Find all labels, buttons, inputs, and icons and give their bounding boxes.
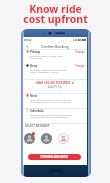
staticText: Change <box>75 50 85 54</box>
staticText: Schedule bookings and reserve your spot … <box>30 113 73 119</box>
staticText: Start booking now to lock in service at … <box>30 98 72 104</box>
staticText: Drop <box>30 64 38 68</box>
button[interactable]: Drop <box>26 64 85 74</box>
button[interactable]: Add payment method <box>58 133 69 144</box>
button[interactable]: Now <box>26 94 85 104</box>
staticText: Change <box>75 64 85 68</box>
button[interactable]: Schedule <box>26 109 85 119</box>
staticText: Emporio Tower, Vasant Kunj New Delhi <box>30 54 63 60</box>
staticText: Now <box>30 94 38 98</box>
button[interactable]: Back <box>25 44 30 49</box>
staticText: Terminal 3 International Airport Delhi, … <box>30 68 68 74</box>
staticText: Pickup <box>30 50 41 54</box>
staticText: CONFIRM AND BOOK <box>40 155 69 159</box>
staticText: Know ride cost upfront <box>23 2 88 26</box>
staticText: SAVE ₹50 ON THIS RIDE <box>36 81 71 85</box>
button[interactable]: Pickup <box>26 50 85 60</box>
staticText: Confirm Booking <box>23 44 87 49</box>
button[interactable]: Payment method <box>24 133 35 144</box>
staticText: Schedule <box>30 109 44 113</box>
button[interactable]: CONFIRM AND BOOK <box>28 154 81 160</box>
staticText: SELECT PAYMENT <box>25 124 50 128</box>
button[interactable]: Payment method <box>41 133 52 144</box>
staticText: Add ₹5 Tip <box>23 85 87 89</box>
